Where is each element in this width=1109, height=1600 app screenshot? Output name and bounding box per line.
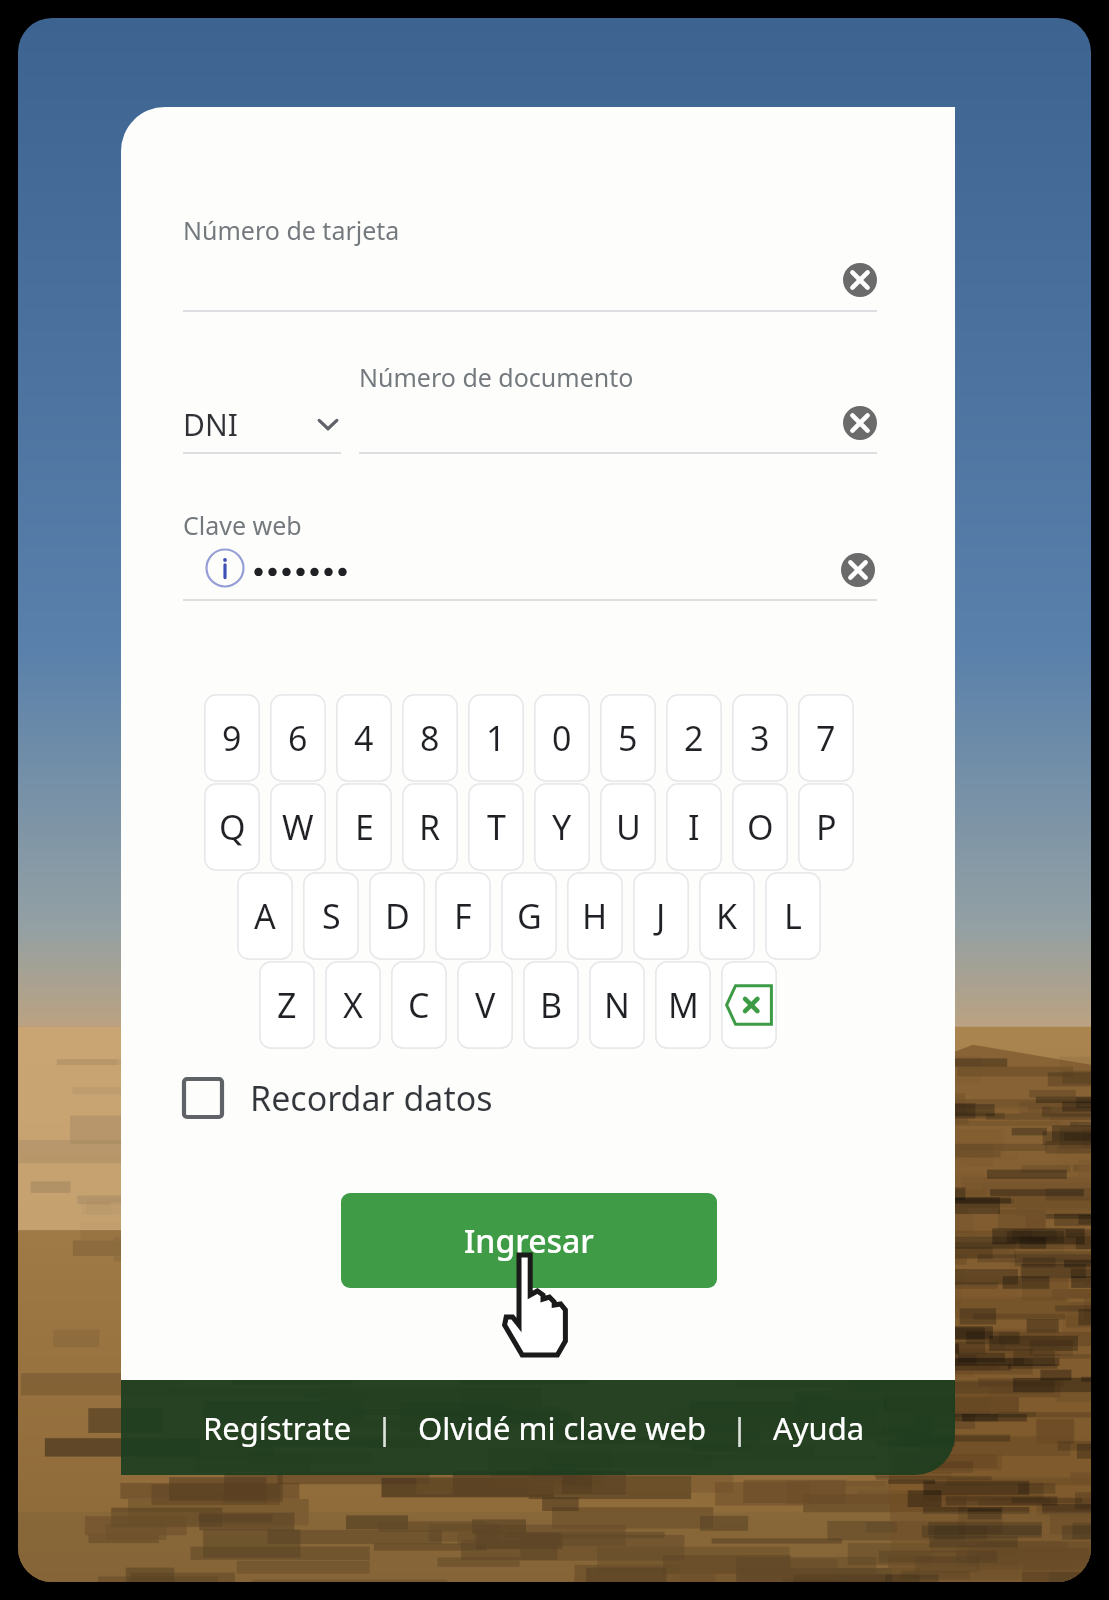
button[interactable]: M	[655, 961, 711, 1049]
staticText: Q	[219, 804, 246, 850]
staticText: K	[716, 893, 738, 939]
staticText: Ayuda	[773, 1407, 865, 1449]
staticText: D	[385, 893, 410, 939]
staticText: 5	[618, 715, 638, 761]
button[interactable]: Q	[204, 783, 260, 871]
button[interactable]: 9	[204, 694, 260, 782]
button[interactable]: 7	[798, 694, 854, 782]
button[interactable]: V	[457, 961, 513, 1049]
button[interactable]: H	[567, 872, 623, 960]
staticText: L	[784, 893, 802, 939]
button[interactable]: DNI	[183, 395, 341, 453]
staticText: Ingresar	[464, 1219, 594, 1263]
staticText: Clave web	[183, 508, 302, 542]
staticText: 3	[750, 715, 770, 761]
staticText: 0	[552, 715, 572, 761]
staticText: G	[517, 893, 542, 939]
staticText: 9	[222, 715, 242, 761]
button[interactable]: R	[402, 783, 458, 871]
staticText: 6	[288, 715, 308, 761]
staticText: DNI	[183, 404, 238, 445]
button[interactable]: P	[798, 783, 854, 871]
button[interactable]: 5	[600, 694, 656, 782]
button[interactable]: Olvidé mi clave web	[414, 1399, 711, 1457]
staticText: O	[747, 804, 774, 850]
button[interactable]: Ayuda	[769, 1399, 869, 1457]
button[interactable]: K	[699, 872, 755, 960]
button[interactable]: Borrar clave web	[839, 551, 877, 589]
button[interactable]: Borrar número de documento	[841, 404, 879, 442]
button[interactable]: J	[633, 872, 689, 960]
staticText: S	[322, 893, 341, 939]
button[interactable]: G	[501, 872, 557, 960]
staticText: Regístrate	[203, 1407, 352, 1449]
button[interactable]: 8	[402, 694, 458, 782]
button[interactable]: Borrar	[721, 961, 777, 1049]
button[interactable]: D	[369, 872, 425, 960]
button[interactable]: B	[523, 961, 579, 1049]
button[interactable]: 2	[666, 694, 722, 782]
staticText: Número de documento	[359, 360, 634, 394]
staticText: W	[282, 804, 314, 850]
staticText: 2	[684, 715, 704, 761]
staticText: H	[582, 893, 608, 939]
button[interactable]: Z	[259, 961, 315, 1049]
staticText: V	[475, 982, 496, 1028]
button[interactable]: I	[666, 783, 722, 871]
staticText: Olvidé mi clave web	[418, 1407, 707, 1449]
staticText: 8	[420, 715, 440, 761]
staticText: R	[419, 804, 441, 850]
button[interactable]: F	[435, 872, 491, 960]
staticText: N	[604, 982, 630, 1028]
button[interactable]: W	[270, 783, 326, 871]
button[interactable]: E	[336, 783, 392, 871]
staticText: 7	[816, 715, 836, 761]
staticText: |	[731, 1407, 749, 1449]
staticText: J	[656, 893, 666, 939]
button[interactable]: A	[237, 872, 293, 960]
button[interactable]: Y	[534, 783, 590, 871]
staticText: A	[254, 893, 276, 939]
button[interactable]: Regístrate	[199, 1399, 356, 1457]
staticText: 1	[486, 715, 506, 761]
button[interactable]: 1	[468, 694, 524, 782]
staticText: M	[668, 982, 699, 1028]
staticText: E	[355, 804, 374, 850]
button[interactable]: 4	[336, 694, 392, 782]
button[interactable]: C	[391, 961, 447, 1049]
button[interactable]: U	[600, 783, 656, 871]
button[interactable]: X	[325, 961, 381, 1049]
staticText: C	[408, 982, 430, 1028]
staticText: T	[487, 804, 506, 850]
staticText: Y	[552, 804, 572, 850]
button[interactable]: S	[303, 872, 359, 960]
button[interactable]: Borrar número de tarjeta	[841, 261, 879, 299]
button[interactable]: 6	[270, 694, 326, 782]
staticText: 4	[354, 715, 374, 761]
staticText: Z	[277, 982, 297, 1028]
staticText: X	[343, 982, 363, 1028]
button[interactable]: 3	[732, 694, 788, 782]
staticText: U	[616, 804, 641, 850]
staticText: I	[688, 804, 700, 850]
staticText: Recordar datos	[250, 1075, 493, 1121]
staticText: |	[376, 1407, 394, 1449]
button[interactable]: Información clave web	[205, 548, 245, 588]
button[interactable]: L	[765, 872, 821, 960]
button[interactable]: Ingresar	[341, 1193, 717, 1288]
button[interactable]: O	[732, 783, 788, 871]
button[interactable]: Recordar datos	[181, 1067, 493, 1129]
staticText: Número de tarjeta	[183, 213, 400, 247]
staticText: P	[816, 804, 837, 850]
staticText: F	[454, 893, 472, 939]
button[interactable]: N	[589, 961, 645, 1049]
staticText: B	[540, 982, 563, 1028]
other: Borrar	[721, 961, 777, 1049]
button[interactable]: T	[468, 783, 524, 871]
button[interactable]: 0	[534, 694, 590, 782]
